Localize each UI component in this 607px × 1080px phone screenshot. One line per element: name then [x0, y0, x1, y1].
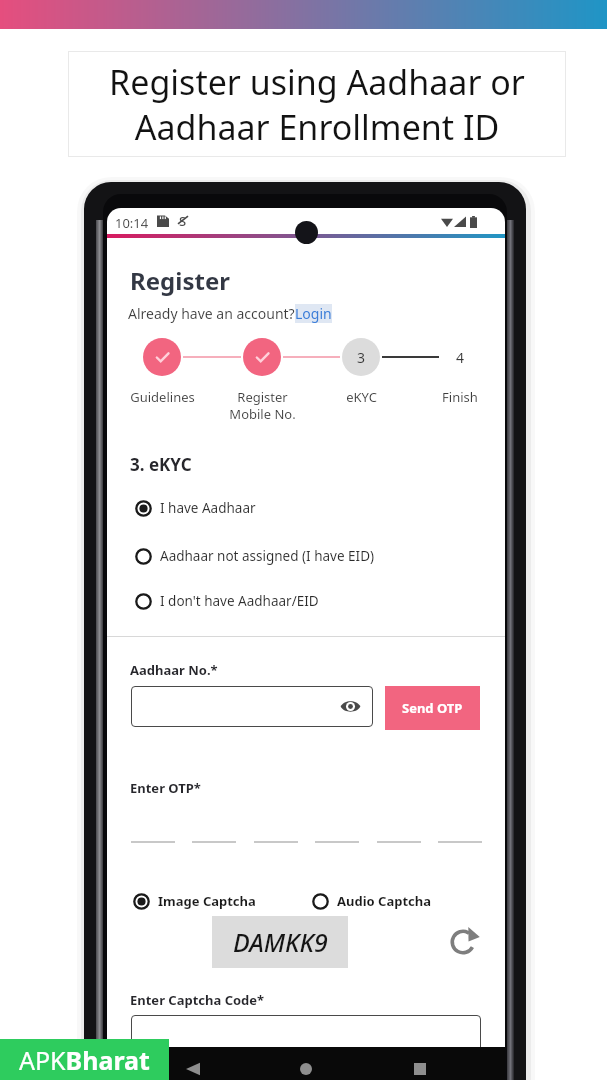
- button[interactable]: [131, 1015, 481, 1055]
- button[interactable]: 4: [441, 338, 479, 376]
- staticText: S: [179, 212, 187, 227]
- staticText: 10:14: [115, 214, 149, 232]
- staticText: Login: [295, 304, 332, 323]
- button[interactable]: [243, 338, 281, 376]
- staticText: Register Mobile No.: [229, 388, 296, 423]
- button[interactable]: Image Captcha: [133, 888, 256, 914]
- staticText: I have Aadhaar: [160, 499, 256, 517]
- button[interactable]: Show Aadhaar number: [131, 686, 373, 727]
- staticText: Enter Captcha Code*: [130, 991, 265, 1009]
- staticText: Register using Aadhaar or Aadhaar Enroll…: [109, 59, 525, 150]
- staticText: Finish: [442, 388, 478, 406]
- button[interactable]: Home: [285, 1049, 327, 1080]
- staticText: Guidelines: [130, 388, 195, 406]
- button[interactable]: Back: [172, 1049, 214, 1080]
- button[interactable]: 3: [342, 338, 380, 376]
- staticText: DAMKK9: [233, 925, 328, 959]
- button[interactable]: Aadhaar not assigned (I have EID): [135, 543, 375, 569]
- button[interactable]: [143, 338, 181, 376]
- staticText: Aadhaar No.*: [130, 661, 218, 679]
- staticText: 3: [357, 348, 366, 367]
- button[interactable]: Refresh captcha: [447, 923, 483, 959]
- staticText: Enter OTP*: [130, 779, 201, 797]
- staticText: Send OTP: [402, 699, 463, 717]
- button[interactable]: Login: [295, 304, 332, 323]
- button[interactable]: Send OTP: [385, 686, 480, 730]
- button[interactable]: Recents: [399, 1049, 441, 1080]
- staticText: Register: [130, 264, 230, 297]
- staticText: 4: [456, 348, 465, 367]
- staticText: Image Captcha: [158, 892, 256, 910]
- staticText: Audio Captcha: [337, 892, 431, 910]
- staticText: APKBharat: [19, 1043, 150, 1077]
- other: Show Aadhaar number: [340, 696, 361, 717]
- staticText: eKYC: [346, 388, 377, 406]
- button[interactable]: I have Aadhaar: [135, 495, 256, 521]
- staticText: Aadhaar not assigned (I have EID): [160, 547, 375, 565]
- button[interactable]: APKBharat: [0, 1039, 169, 1080]
- staticText: I don't have Aadhaar/EID: [160, 592, 319, 610]
- button[interactable]: I don't have Aadhaar/EID: [135, 588, 319, 614]
- staticText: Already have an account?: [128, 304, 295, 323]
- button[interactable]: Audio Captcha: [312, 888, 431, 914]
- staticText: 3. eKYC: [130, 453, 192, 476]
